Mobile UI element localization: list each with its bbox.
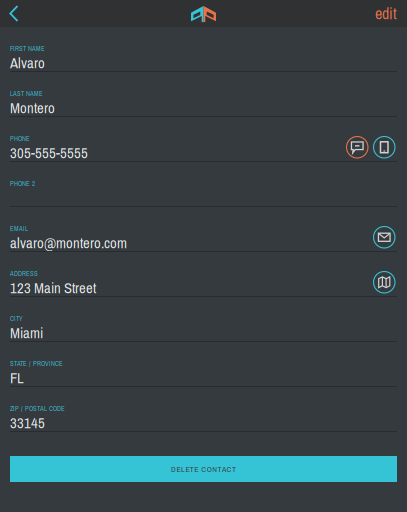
staticText: alvaro@montero.com — [10, 233, 127, 253]
staticText: PHONE — [10, 134, 30, 143]
button[interactable]: DELETE CONTACT — [0, 456, 407, 482]
button[interactable]: edit — [361, 0, 407, 27]
staticText: 33145 — [10, 413, 45, 433]
staticText: 305-555-5555 — [10, 143, 88, 163]
staticText: CITY — [10, 314, 23, 323]
staticText: DELETE CONTACT — [171, 464, 236, 474]
staticText: FIRST NAME — [10, 44, 45, 53]
staticText: Montero — [10, 98, 55, 118]
staticText: STATE / PROVINCE — [10, 359, 63, 368]
button[interactable]: Send message — [346, 136, 368, 158]
button[interactable]: Open in maps — [373, 271, 395, 293]
staticText: ZIP / POSTAL CODE — [10, 404, 65, 413]
staticText: PHONE 2 — [10, 179, 35, 188]
staticText: FL — [10, 368, 24, 388]
staticText: LAST NAME — [10, 89, 43, 98]
staticText: Alvaro — [10, 53, 45, 73]
staticText: EMAIL — [10, 224, 28, 233]
staticText: 123 Main Street — [10, 278, 96, 298]
button[interactable]: Send email — [373, 226, 395, 248]
button[interactable]: Call — [373, 136, 395, 158]
button[interactable]: Back — [0, 0, 33, 27]
staticText: ADDRESS — [10, 269, 38, 278]
staticText: edit — [375, 3, 397, 24]
staticText: Miami — [10, 323, 43, 343]
